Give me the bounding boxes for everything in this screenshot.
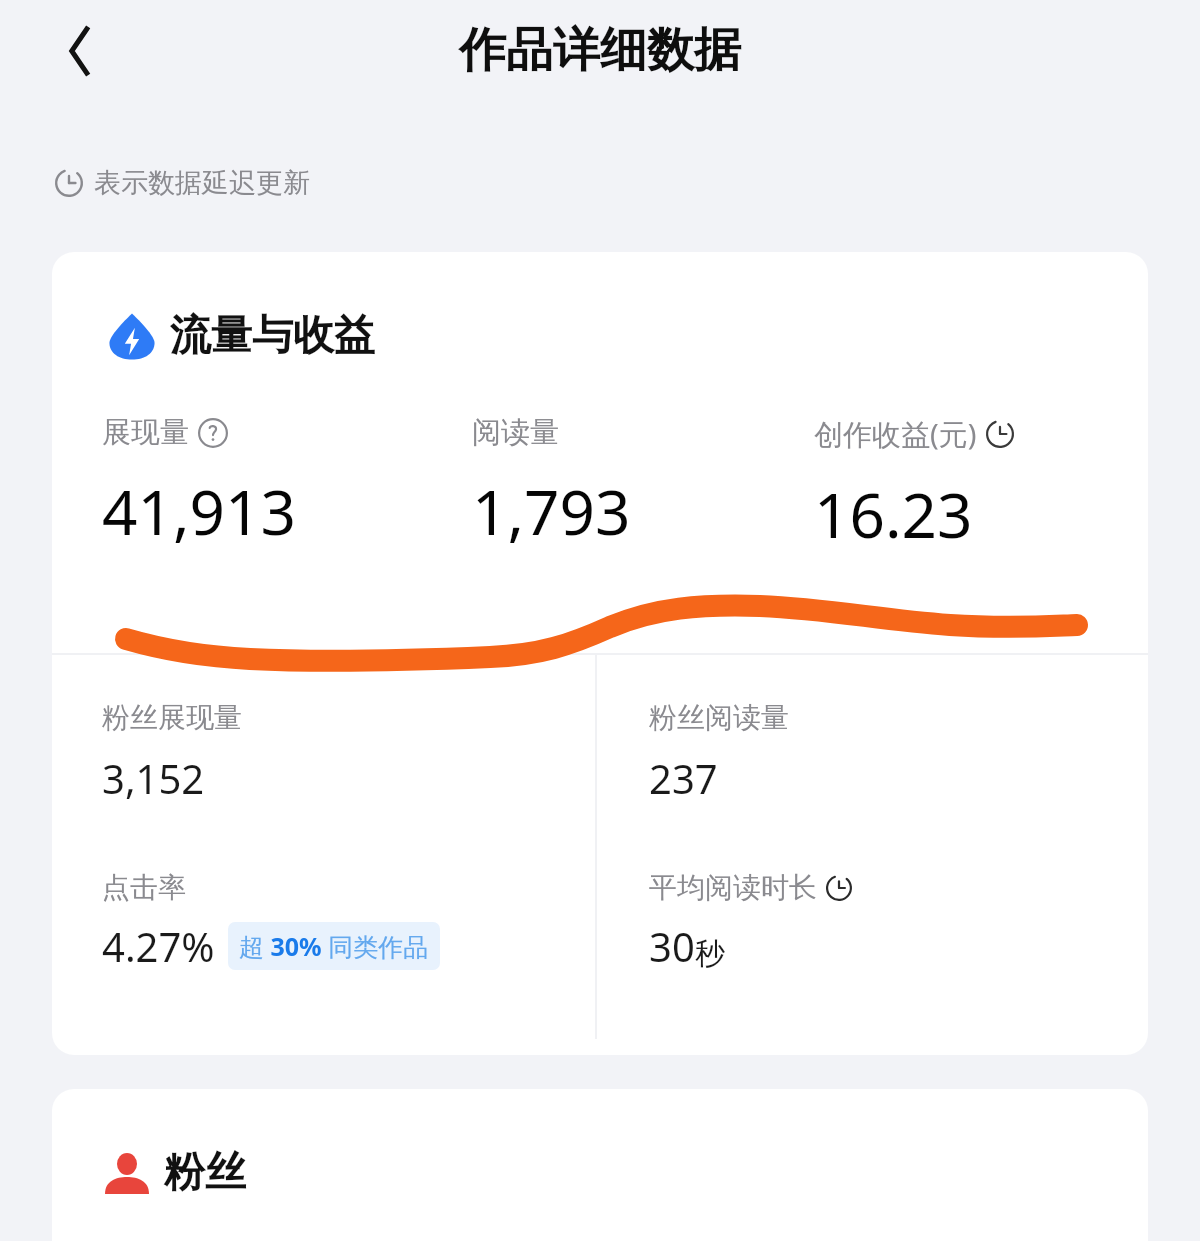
staticText: 阅读量	[472, 414, 559, 451]
staticText: 16.23	[814, 472, 973, 556]
staticText: 秒	[695, 935, 725, 973]
staticText: 平均阅读时长	[649, 870, 817, 905]
staticText: 3,152	[102, 751, 205, 805]
staticText: 创作收益(元)	[814, 414, 977, 454]
staticText: 超 30% 同类作品	[239, 929, 429, 963]
button[interactable]: Back	[30, 8, 116, 94]
staticText: 1,793	[472, 469, 631, 553]
staticText: 展现量	[102, 414, 189, 451]
staticText: 作品详细数据	[459, 21, 741, 80]
staticText: 237	[649, 751, 718, 805]
staticText: 41,913	[102, 469, 296, 553]
staticText: 粉丝阅读量	[649, 700, 789, 735]
staticText: 30	[649, 919, 695, 973]
button[interactable]: 超 30% 同类作品	[228, 922, 440, 970]
staticText: 流量与收益	[170, 310, 375, 362]
staticText: 粉丝	[164, 1147, 246, 1199]
staticText: 表示数据延迟更新	[94, 166, 310, 200]
staticText: 点击率	[102, 870, 186, 905]
staticText: 粉丝展现量	[102, 700, 242, 735]
staticText: 4.27%	[102, 919, 215, 973]
